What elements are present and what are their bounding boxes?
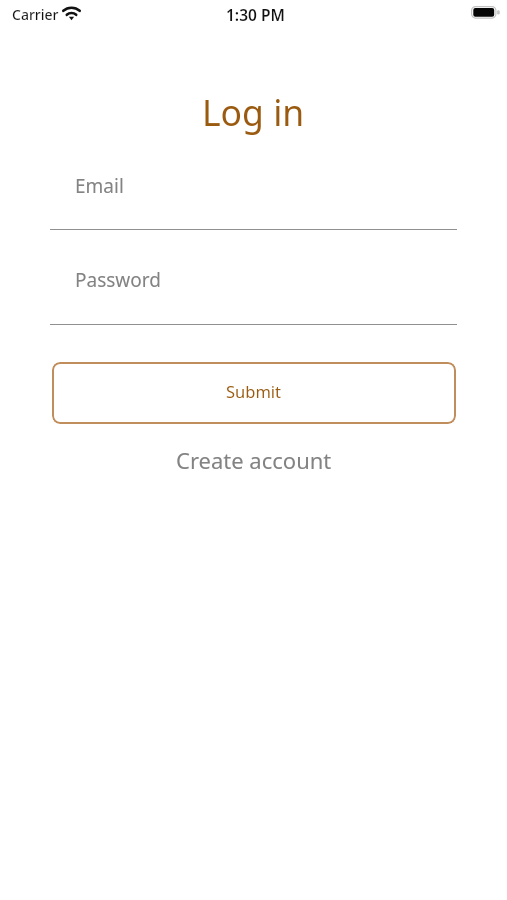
staticText: Carrier	[12, 5, 59, 24]
other: Wi-Fi signal	[62, 6, 81, 20]
button[interactable]: Email	[50, 168, 457, 230]
button[interactable]: Password	[50, 262, 457, 325]
staticText: Submit	[226, 380, 282, 402]
button[interactable]: Submit	[52, 362, 456, 424]
staticText: 1:30 PM	[226, 4, 285, 25]
staticText: Password	[75, 267, 161, 293]
staticText: Create account	[176, 445, 332, 475]
button[interactable]: Create account	[52, 440, 456, 480]
staticText: Log in	[202, 88, 305, 136]
staticText: Email	[75, 173, 124, 199]
other: Battery full	[471, 6, 500, 19]
